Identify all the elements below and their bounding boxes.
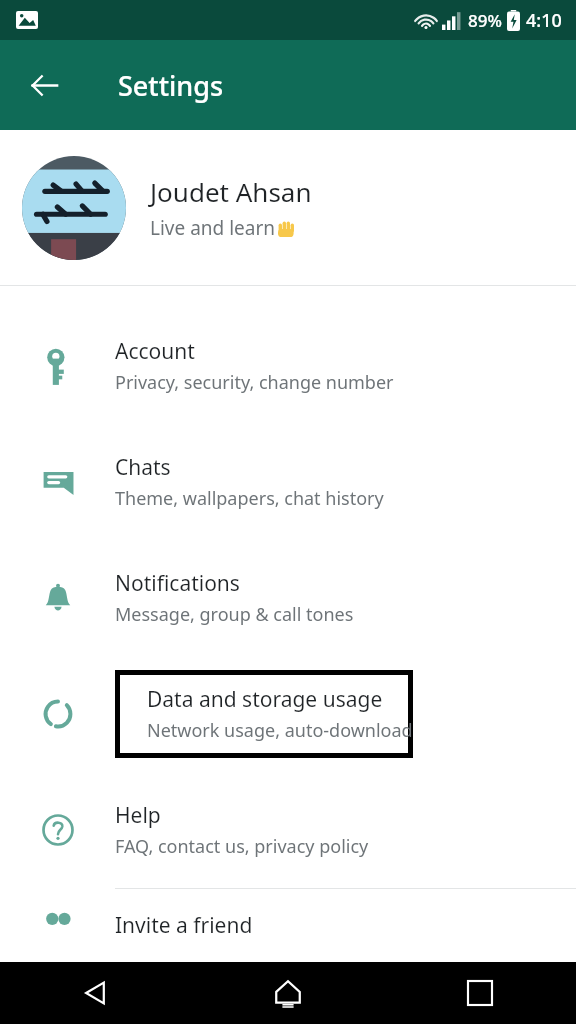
staticText: Privacy, security, change number (115, 370, 394, 395)
button[interactable]: Back (16, 57, 72, 113)
staticText: FAQ, contact us, privacy policy (115, 834, 369, 859)
staticText: Data and storage usage (147, 685, 383, 714)
staticText: Theme, wallpapers, chat history (115, 486, 384, 511)
staticText: Live and learn (150, 215, 276, 241)
staticText: Help (115, 801, 161, 830)
staticText: Joudet Ahsan (150, 174, 312, 209)
button[interactable]: Home (258, 963, 318, 1023)
button[interactable]: Invite a friend (0, 889, 576, 962)
button[interactable]: Joudet Ahsan (0, 130, 576, 285)
staticText: Network usage, auto-download (147, 718, 413, 743)
staticText: Account (115, 337, 195, 366)
staticText: Notifications (115, 569, 240, 598)
button[interactable]: Data and storage usage (0, 656, 576, 772)
button[interactable]: Account (0, 308, 576, 424)
button[interactable]: Notifications (0, 540, 576, 656)
staticText: Invite a friend (115, 911, 253, 940)
staticText: 4:10 (526, 8, 562, 33)
staticText: 89% (468, 9, 502, 32)
staticText: Chats (115, 453, 171, 482)
staticText: Message, group & call tones (115, 602, 354, 627)
button[interactable]: Chats (0, 424, 576, 540)
button[interactable]: Help (0, 772, 576, 888)
button[interactable]: Recents (450, 963, 510, 1023)
button[interactable]: Back (66, 963, 126, 1023)
staticText: Settings (118, 67, 224, 104)
